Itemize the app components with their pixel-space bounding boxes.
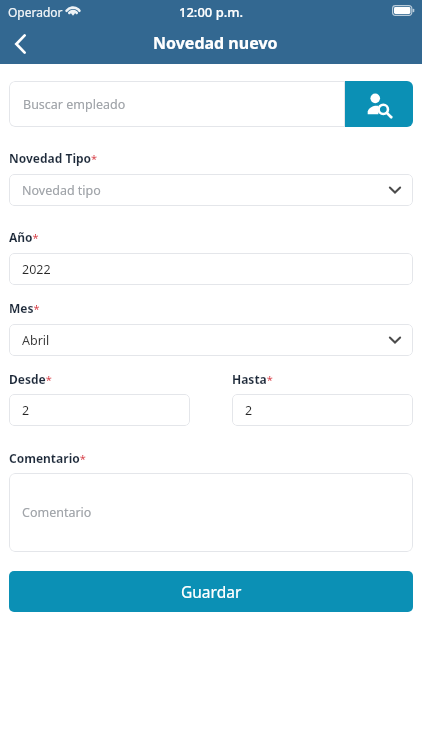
staticText: Novedad Tipo* <box>9 150 98 166</box>
staticText: Guardar <box>181 581 242 602</box>
button[interactable]: Buscar empleado <box>9 81 345 127</box>
staticText: Comentario <box>22 504 92 521</box>
staticText: Año* <box>9 229 39 245</box>
staticText: 2 <box>245 402 253 419</box>
button[interactable]: Comentario <box>9 473 413 552</box>
button[interactable]: Back <box>1 24 41 64</box>
button[interactable]: 2 <box>9 394 190 426</box>
staticText: Abril <box>22 332 50 349</box>
staticText: Buscar empleado <box>23 96 126 113</box>
button[interactable]: Abril <box>9 324 413 356</box>
staticText: 2 <box>22 402 30 419</box>
button[interactable]: Buscar empleado <box>345 81 413 127</box>
button[interactable]: Guardar <box>9 571 413 612</box>
staticText: Hasta* <box>232 371 273 387</box>
button[interactable]: Novedad tipo <box>9 174 413 206</box>
staticText: 2022 <box>22 261 51 278</box>
staticText: Operador <box>8 4 63 20</box>
staticText: Desde* <box>9 371 52 387</box>
staticText: 12:00 p.m. <box>179 3 244 21</box>
button[interactable]: 2 <box>232 394 413 426</box>
button[interactable]: 2022 <box>9 253 413 285</box>
staticText: Comentario* <box>9 450 86 466</box>
staticText: Novedad nuevo <box>153 32 278 54</box>
staticText: Mes* <box>9 300 40 316</box>
staticText: Novedad tipo <box>22 182 101 199</box>
